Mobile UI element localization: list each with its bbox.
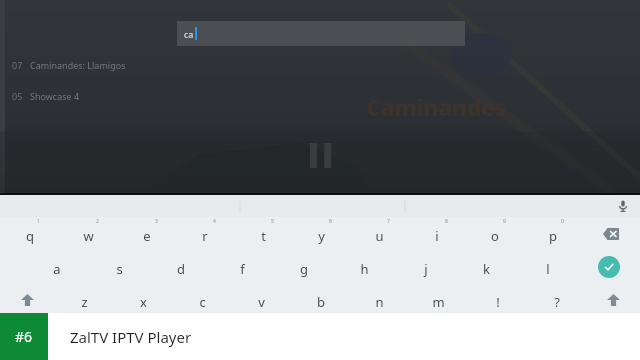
staticText: 2 [96, 218, 99, 225]
staticText: 1 [37, 218, 40, 225]
staticText: l [546, 260, 550, 278]
staticText: z [81, 293, 88, 311]
staticText: q [26, 227, 34, 245]
button[interactable]: 3 [118, 217, 176, 250]
staticText: 8 [445, 218, 448, 225]
button[interactable]: ? [527, 283, 586, 316]
staticText: a [53, 260, 61, 278]
staticText: 0 [561, 218, 564, 225]
button[interactable]: ca [177, 21, 465, 46]
staticText: y [318, 227, 325, 245]
staticText: f [240, 260, 245, 278]
button[interactable]: f [212, 250, 273, 283]
staticText: 07 [12, 59, 23, 71]
staticText: m [432, 293, 445, 311]
button[interactable]: m [409, 283, 468, 316]
staticText: b [317, 293, 325, 311]
staticText: c [199, 293, 206, 311]
button[interactable]: 4 [176, 217, 234, 250]
staticText: 7 [387, 218, 390, 225]
button[interactable]: 7 [350, 217, 408, 250]
staticText: h [360, 260, 369, 278]
button[interactable]: ! [468, 283, 527, 316]
button[interactable]: #6 [0, 313, 48, 360]
button[interactable]: 1 [0, 217, 59, 250]
button[interactable]: Enter [598, 256, 620, 278]
staticText: v [258, 293, 265, 311]
staticText: 05 [12, 90, 23, 102]
button[interactable]: 05 [12, 90, 232, 102]
staticText: x [140, 293, 147, 311]
button[interactable]: a [26, 250, 88, 283]
button[interactable]: l [517, 250, 578, 283]
staticText: i [435, 227, 439, 245]
staticText: 3 [155, 218, 158, 225]
staticText: p [549, 227, 557, 245]
button[interactable]: Backspace [582, 217, 640, 250]
button[interactable]: j [395, 250, 456, 283]
button[interactable]: 8 [408, 217, 466, 250]
button[interactable]: x [114, 283, 173, 316]
button[interactable]: v [232, 283, 291, 316]
button[interactable]: Shift [586, 283, 640, 316]
staticText: u [375, 227, 384, 245]
button[interactable]: 2 [59, 217, 118, 250]
staticText: r [202, 227, 208, 245]
button[interactable]: Shift [0, 283, 54, 316]
staticText: 4 [213, 218, 216, 225]
button[interactable]: s [88, 250, 150, 283]
staticText: w [83, 227, 94, 245]
button[interactable]: k [456, 250, 517, 283]
staticText: e [143, 227, 151, 245]
staticText: g [300, 260, 308, 278]
button[interactable]: g [273, 250, 334, 283]
staticText: 6 [329, 218, 332, 225]
button[interactable]: h [334, 250, 395, 283]
staticText: s [116, 260, 123, 278]
button[interactable]: n [350, 283, 409, 316]
staticText: n [375, 293, 384, 311]
button[interactable]: 6 [292, 217, 350, 250]
staticText: Showcase 4 [30, 90, 80, 102]
staticText: 5 [271, 218, 274, 225]
button[interactable]: Voice input [613, 196, 633, 216]
staticText: t [261, 227, 266, 245]
button[interactable]: 0 [524, 217, 582, 250]
button[interactable]: z [54, 283, 114, 316]
staticText: #6 [15, 327, 33, 346]
staticText: j [424, 260, 428, 278]
staticText: Caminandes: Llamigos [30, 59, 126, 71]
staticText: ? [554, 293, 560, 311]
button[interactable]: 9 [466, 217, 524, 250]
button[interactable]: 5 [234, 217, 292, 250]
button[interactable]: 07 [12, 59, 232, 71]
button[interactable]: c [173, 283, 232, 316]
staticText: o [491, 227, 499, 245]
staticText: Caminandes [366, 91, 506, 122]
staticText: d [177, 260, 185, 278]
staticText: ZalTV IPTV Player [70, 327, 192, 347]
staticText: ca [184, 28, 194, 40]
button[interactable]: b [291, 283, 350, 316]
staticText: 9 [503, 218, 506, 225]
button[interactable]: d [150, 250, 212, 283]
staticText: k [483, 260, 490, 278]
staticText: ! [496, 293, 500, 311]
